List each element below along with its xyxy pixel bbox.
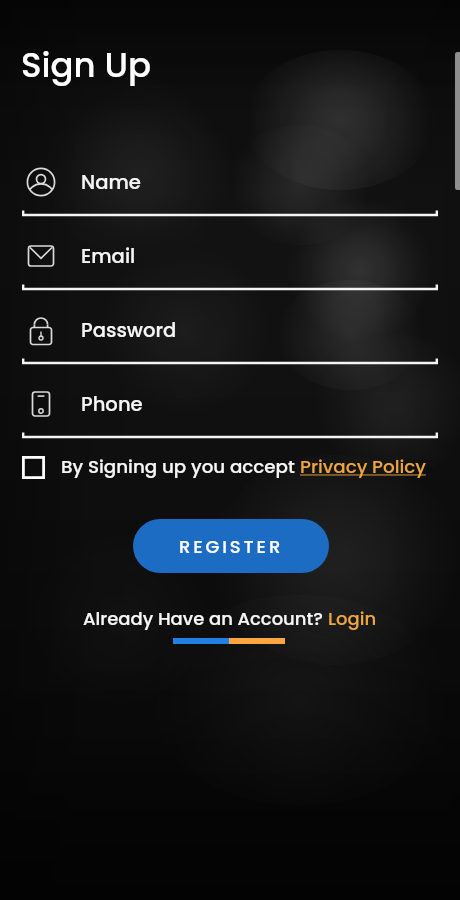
button[interactable]: Privacy Policy: [300, 454, 426, 480]
staticText: Phone: [81, 390, 143, 417]
staticText: REGISTER: [179, 534, 284, 559]
staticText: Password: [81, 316, 177, 343]
staticText: Email: [81, 242, 136, 269]
staticText: Name: [81, 168, 141, 195]
button[interactable]: [22, 233, 438, 295]
button[interactable]: Login: [328, 606, 377, 631]
staticText: Already Have an Account?: [83, 606, 328, 631]
button[interactable]: [22, 159, 438, 221]
button[interactable]: [22, 307, 438, 369]
staticText: Sign Up: [21, 41, 151, 89]
button[interactable]: Accept privacy policy: [22, 456, 45, 479]
button[interactable]: [22, 381, 438, 443]
button[interactable]: REGISTER: [133, 519, 329, 573]
staticText: By Signing up you accept: [61, 454, 300, 480]
